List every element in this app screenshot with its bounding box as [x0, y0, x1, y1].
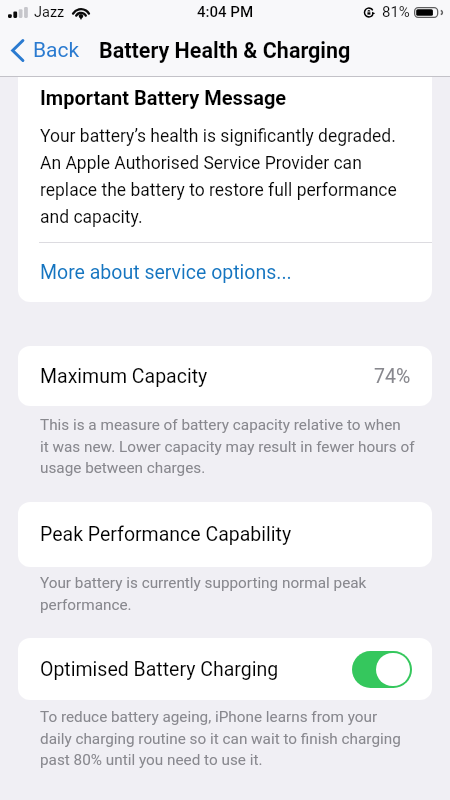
staticText: Maximum Capacity [40, 365, 208, 388]
button[interactable]: Optimised Battery Charging toggle [352, 651, 412, 688]
staticText: 74% [374, 365, 411, 388]
button[interactable]: Maximum Capacity [18, 346, 432, 406]
staticText: 81% [382, 3, 410, 21]
staticText: More about service options... [40, 261, 292, 284]
button[interactable]: Peak Performance Capability [18, 502, 432, 567]
staticText: Peak Performance Capability [40, 523, 292, 546]
staticText: Your battery is currently supporting nor… [40, 574, 367, 614]
staticText: Jazz [34, 4, 65, 21]
button[interactable]: More about service options... [18, 243, 432, 302]
staticText: Important Battery Message [40, 86, 287, 109]
staticText: This is a measure of battery capacity re… [40, 416, 415, 477]
button[interactable]: Back [0, 34, 90, 67]
staticText: Battery Health & Charging [99, 38, 351, 63]
staticText: Back [33, 38, 80, 63]
staticText: Optimised Battery Charging [40, 658, 279, 681]
staticText: Your battery’s health is significantly d… [40, 126, 397, 228]
staticText: 4:04 PM [197, 3, 254, 21]
staticText: To reduce battery ageing, iPhone learns … [40, 708, 401, 769]
